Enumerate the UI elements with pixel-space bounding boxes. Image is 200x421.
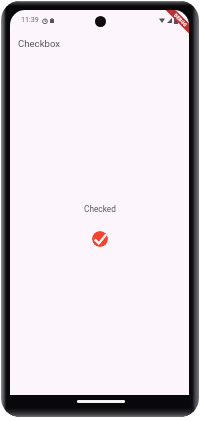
staticText: Checkbox <box>18 38 61 49</box>
staticText: Checked <box>84 204 116 214</box>
staticText: DEBUG <box>173 13 189 28</box>
staticText: 11:39 <box>21 15 39 23</box>
button[interactable]: Checked checkbox <box>92 231 108 247</box>
